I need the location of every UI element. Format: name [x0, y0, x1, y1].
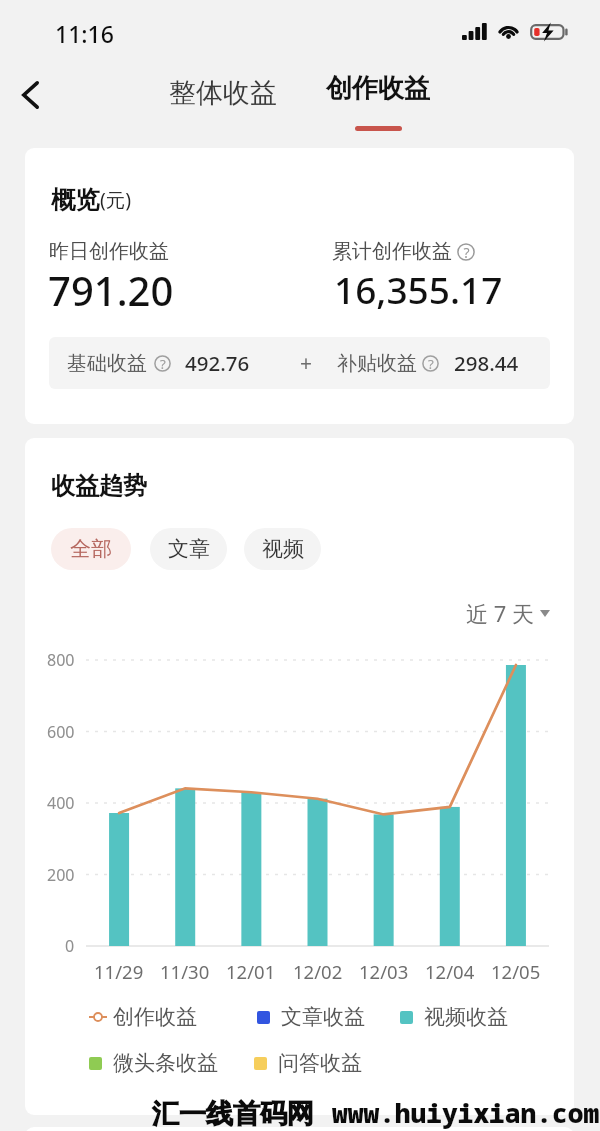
button[interactable]: 整体收益: [163, 72, 283, 114]
staticText: 492.76: [185, 349, 250, 377]
staticText: 400: [47, 792, 75, 814]
staticText: 创作收益: [326, 72, 430, 105]
staticText: 收益趋势: [51, 471, 147, 501]
staticText: 文章收益: [281, 1004, 365, 1030]
staticText: 文章: [168, 536, 210, 562]
staticText: 600: [47, 721, 75, 743]
staticText: 791.20: [48, 263, 174, 317]
staticText: 概览: [51, 184, 100, 215]
button[interactable]: 近 7 天: [466, 596, 561, 630]
staticText: www.huiyixian.com: [332, 1095, 600, 1131]
button[interactable]: 创作收益: [320, 72, 436, 132]
staticText: ?: [160, 355, 166, 372]
staticText: 视频: [262, 536, 304, 562]
staticText: 16,355.17: [334, 264, 503, 314]
staticText: 12/05: [491, 959, 541, 983]
staticText: 近 7 天: [466, 598, 535, 628]
button[interactable]: 文章: [150, 528, 227, 570]
button[interactable]: 文章收益: [257, 1004, 365, 1030]
staticText: 12/04: [425, 959, 475, 983]
staticText: 12/01: [226, 959, 276, 983]
staticText: 11:16: [55, 18, 114, 49]
staticText: 创作收益: [113, 1004, 197, 1030]
staticText: 12/03: [359, 959, 409, 983]
button[interactable]: 视频: [244, 528, 321, 570]
staticText: 基础收益: [67, 351, 147, 376]
staticText: 298.44: [454, 349, 519, 377]
button[interactable]: 基础收益: [49, 337, 550, 389]
button[interactable]: 问答收益: [254, 1050, 362, 1076]
button[interactable]: 微头条收益: [89, 1050, 218, 1076]
staticText: 微头条收益: [113, 1050, 218, 1076]
staticText: 整体收益: [169, 76, 277, 110]
staticText: 200: [47, 864, 75, 886]
button[interactable]: 创作收益: [89, 1004, 197, 1030]
staticText: +: [300, 349, 313, 378]
staticText: ?: [428, 355, 434, 372]
staticText: (元): [100, 186, 132, 213]
staticText: ?: [463, 243, 470, 261]
button[interactable]: Back: [6, 71, 54, 119]
staticText: 12/02: [293, 959, 343, 983]
staticText: 11/30: [160, 959, 210, 983]
staticText: 0: [65, 935, 75, 957]
button[interactable]: 视频收益: [400, 1004, 508, 1030]
staticText: 累计创作收益: [332, 239, 452, 264]
staticText: 11/29: [94, 959, 144, 983]
button[interactable]: 全部: [51, 528, 131, 570]
staticText: 800: [47, 649, 75, 671]
staticText: 昨日创作收益: [49, 239, 169, 264]
staticText: 全部: [70, 536, 112, 562]
staticText: 汇一线首码网: [152, 1097, 314, 1131]
staticText: 问答收益: [278, 1050, 362, 1076]
staticText: 视频收益: [424, 1004, 508, 1030]
staticText: 补贴收益: [337, 351, 417, 376]
